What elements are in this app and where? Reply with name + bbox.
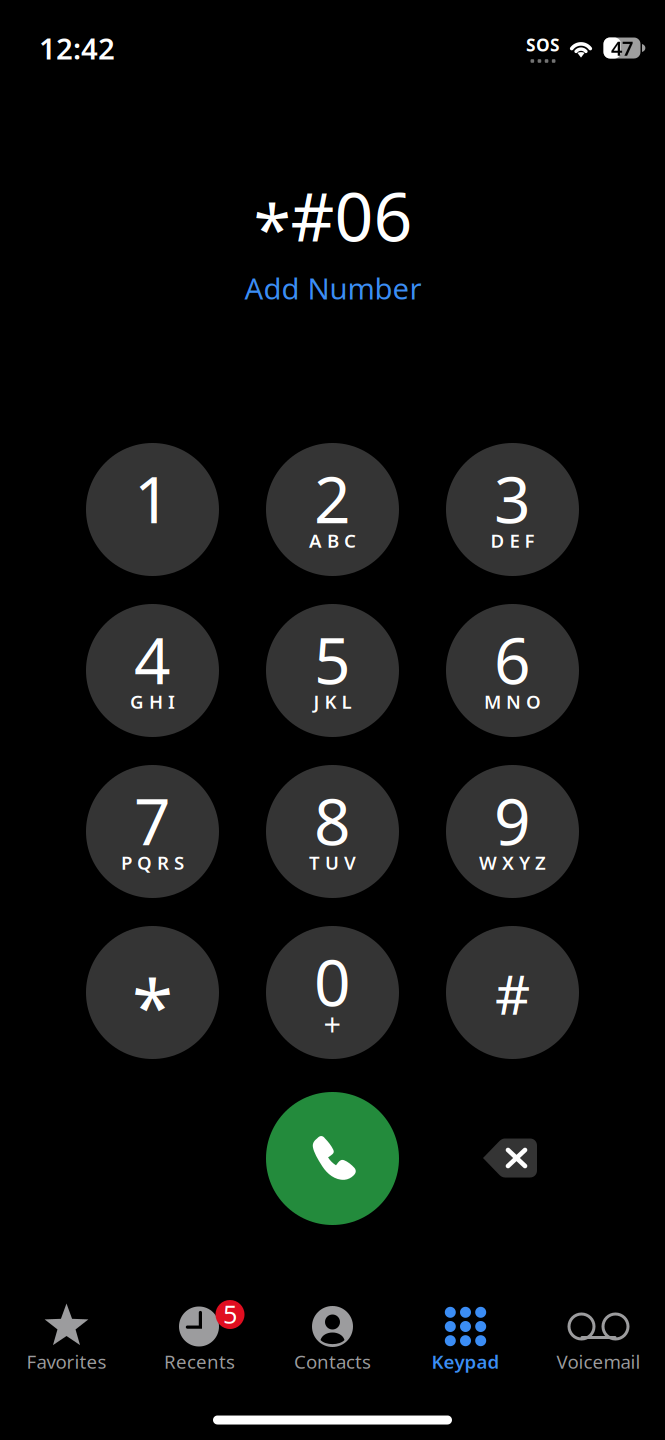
button[interactable]: 8 <box>266 765 399 898</box>
button[interactable]: 4 <box>86 604 219 737</box>
staticText: 2 <box>314 456 351 541</box>
staticText: M N O <box>484 689 541 714</box>
staticText: 12:42 <box>39 28 115 67</box>
staticText: 5 <box>314 617 351 702</box>
staticText: T U V <box>309 850 356 875</box>
staticText: 4 <box>134 617 171 702</box>
staticText: 6 <box>494 617 531 702</box>
button[interactable]: Delete <box>481 1136 539 1179</box>
staticText: Add Number <box>244 268 421 307</box>
staticText: 3 <box>494 456 531 541</box>
button[interactable]: 3 <box>446 443 579 576</box>
button[interactable]: Contacts <box>266 1295 399 1387</box>
staticText: # <box>495 957 530 1030</box>
staticText: 9 <box>494 778 531 863</box>
staticText: + <box>323 1003 341 1044</box>
staticText: 0 <box>314 939 351 1024</box>
button[interactable]: Voicemail <box>532 1295 665 1387</box>
staticText: 7 <box>134 778 171 863</box>
button[interactable]: 1 <box>86 443 219 576</box>
staticText: * <box>132 956 173 1055</box>
button[interactable]: 6 <box>446 604 579 737</box>
staticText: Contacts <box>294 1349 371 1374</box>
staticText: P Q R S <box>121 850 184 875</box>
staticText: W X Y Z <box>479 850 546 875</box>
button[interactable]: 2 <box>266 443 399 576</box>
staticText: G H I <box>130 689 175 714</box>
staticText: 47 <box>611 35 633 61</box>
staticText: Favorites <box>26 1349 106 1374</box>
button[interactable]: 5 <box>133 1295 266 1387</box>
staticText: Voicemail <box>556 1349 640 1374</box>
staticText: #06 <box>290 170 412 260</box>
staticText: Keypad <box>431 1349 499 1374</box>
staticText: J K L <box>313 689 351 714</box>
button[interactable]: * <box>86 926 219 1059</box>
staticText: * <box>253 183 290 273</box>
button[interactable]: Add Number <box>218 266 448 310</box>
button[interactable]: Keypad <box>399 1295 532 1387</box>
staticText: SOS <box>526 33 560 56</box>
button[interactable]: 0 <box>266 926 399 1059</box>
button[interactable]: # <box>446 926 579 1059</box>
button[interactable]: 9 <box>446 765 579 898</box>
staticText: 8 <box>314 778 351 863</box>
staticText: 1 <box>134 456 171 541</box>
staticText: D E F <box>490 528 534 553</box>
staticText: A B C <box>309 528 356 553</box>
button[interactable]: Favorites <box>0 1295 133 1387</box>
button[interactable]: 7 <box>86 765 219 898</box>
staticText: 5 <box>223 1297 237 1331</box>
button[interactable]: 5 <box>266 604 399 737</box>
staticText: Recents <box>164 1349 235 1374</box>
button[interactable]: Call <box>266 1092 399 1225</box>
